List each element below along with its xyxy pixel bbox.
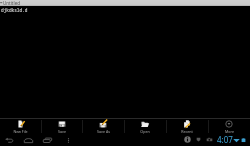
staticText: More [225,129,234,134]
button[interactable]: Recent [166,119,208,135]
staticText: Recent [181,129,193,134]
staticText: Untitled [3,0,20,6]
staticText: Open [140,129,150,134]
button[interactable]: Save [41,119,82,135]
staticText: djkdksld.d [1,7,28,13]
button[interactable]: More [208,119,250,135]
button[interactable]: Home [23,135,34,146]
button[interactable]: Back [4,135,15,146]
button[interactable]: New File [0,119,41,135]
button[interactable]: More options [63,135,74,146]
button[interactable]: Recent apps [42,135,53,146]
staticText: Save [58,129,66,134]
button[interactable]: Save As [82,119,124,135]
staticText: 4:07 [217,134,233,145]
staticText: Save As [97,129,110,134]
button[interactable]: Open [124,119,166,135]
staticText: New File [13,129,28,134]
